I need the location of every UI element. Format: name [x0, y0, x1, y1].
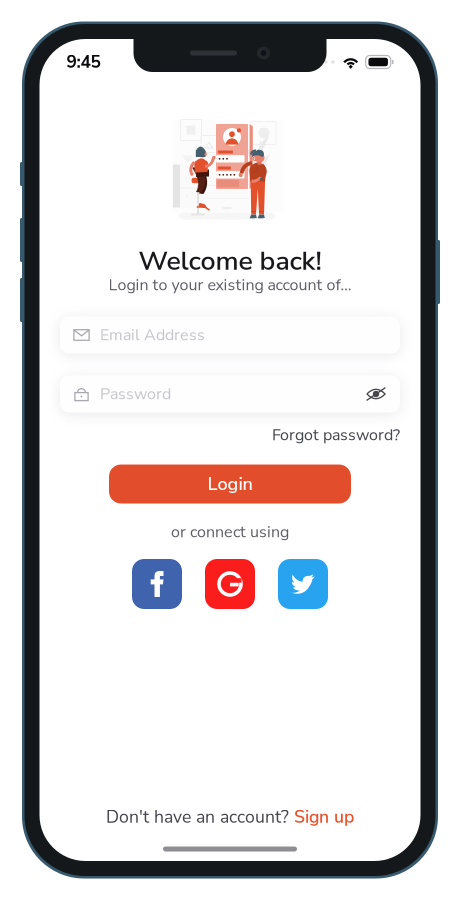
button[interactable]: Login: [109, 464, 351, 503]
staticText: Forgot password?: [272, 424, 400, 446]
staticText: Welcome back!: [138, 243, 321, 279]
staticText: 9:45: [66, 50, 100, 74]
staticText: Don't have an account?: [106, 805, 294, 829]
button[interactable]: Continue with Twitter: [278, 559, 328, 609]
staticText: Login: [207, 472, 252, 496]
button[interactable]: Show password: [366, 386, 386, 402]
button[interactable]: Sign up: [294, 805, 354, 829]
staticText: Sign up: [294, 805, 354, 829]
staticText: Password: [100, 383, 171, 405]
staticText: Email Address: [100, 324, 205, 346]
button[interactable]: Forgot password?: [272, 424, 400, 446]
staticText: or connect using: [171, 521, 289, 543]
staticText: Login to your existing account of…: [108, 274, 351, 296]
button[interactable]: Continue with Facebook: [132, 559, 182, 609]
button[interactable]: Continue with Google: [205, 559, 255, 609]
